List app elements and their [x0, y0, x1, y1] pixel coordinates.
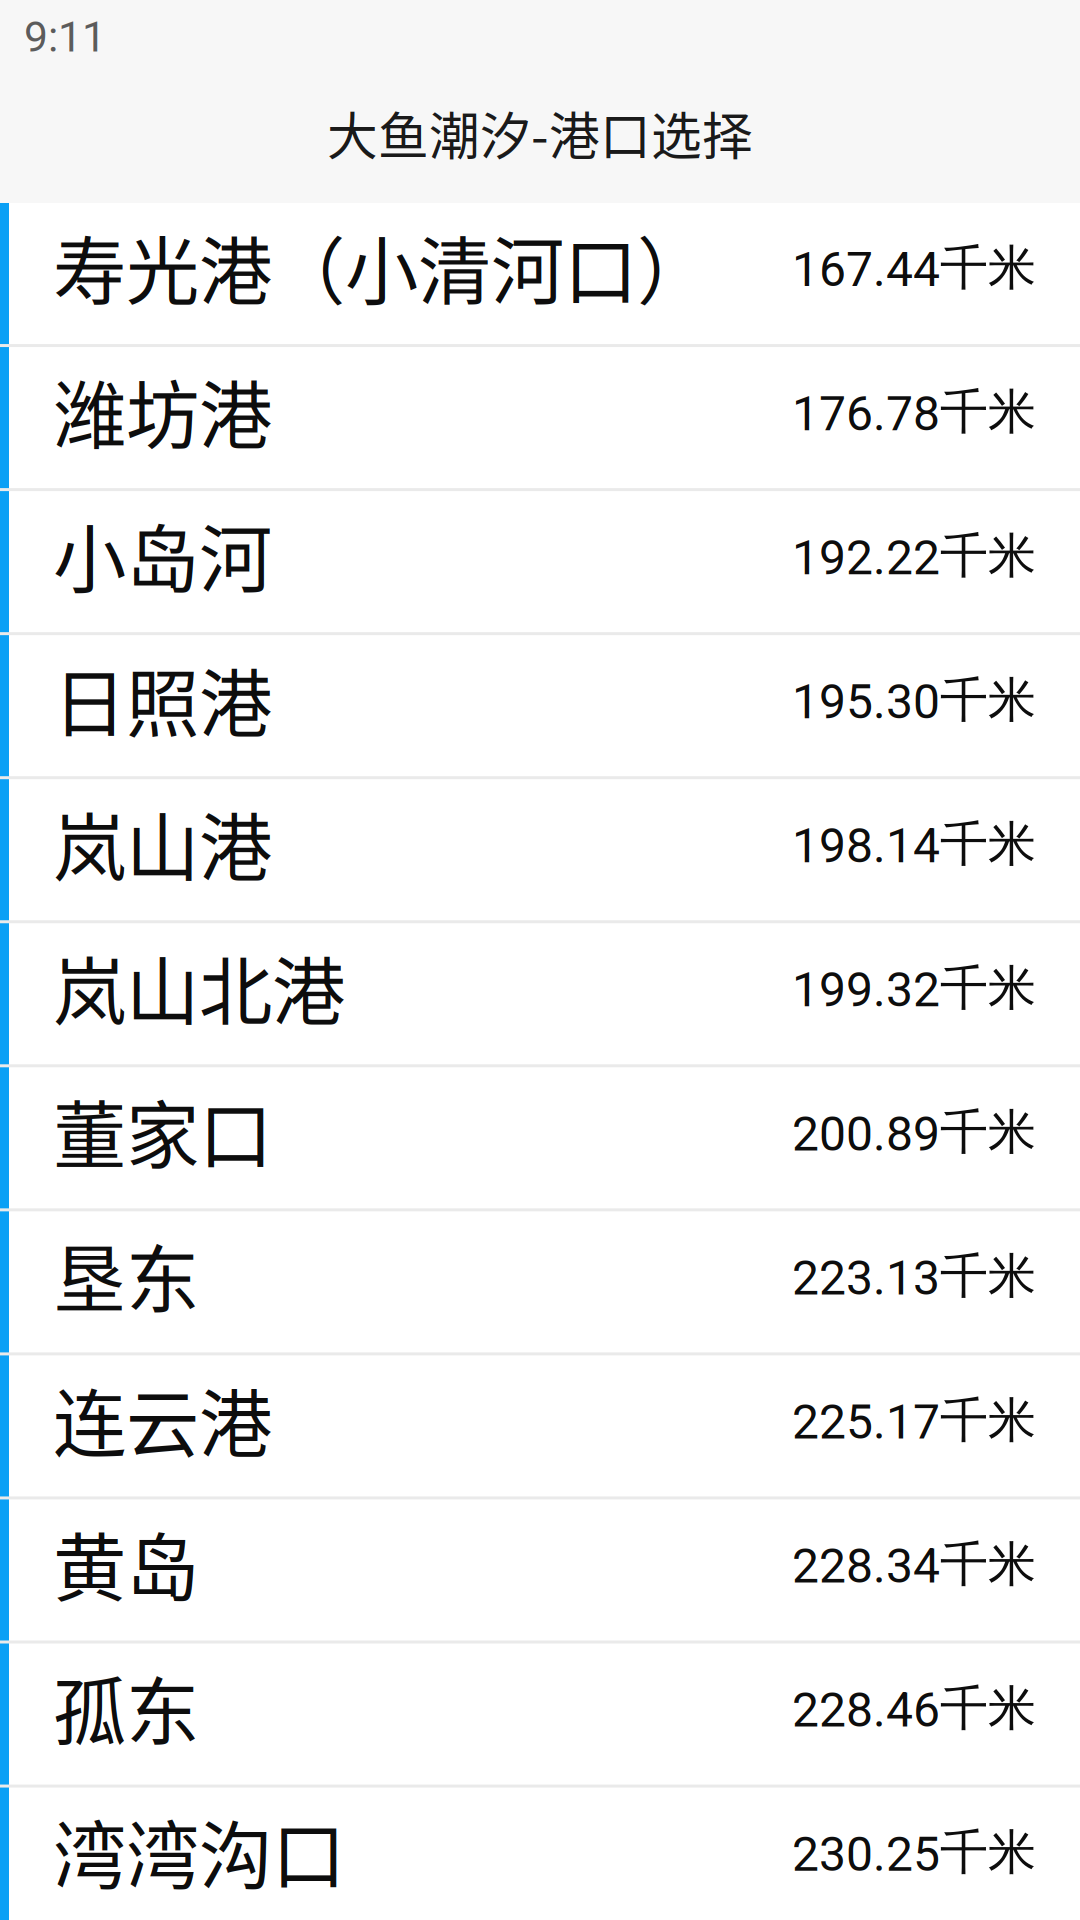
button[interactable]: 黄岛 — [0, 1499, 1080, 1643]
staticText: 223.13千米 — [792, 1246, 1036, 1307]
staticText: 连云港 — [53, 1366, 272, 1472]
button[interactable]: 岚山港 — [0, 779, 1080, 923]
staticText: 200.89千米 — [792, 1102, 1036, 1163]
staticText: 潍坊港 — [53, 357, 272, 464]
button[interactable]: 潍坊港 — [0, 347, 1080, 491]
staticText: 230.25千米 — [792, 1822, 1036, 1883]
button[interactable]: 湾湾沟口 — [0, 1787, 1080, 1920]
staticText: 9:11 — [24, 12, 106, 62]
staticText: 176.78千米 — [792, 382, 1036, 442]
staticText: 228.34千米 — [792, 1534, 1036, 1595]
staticText: 岚山港 — [53, 790, 272, 896]
button[interactable]: 寿光港（小清河口） — [0, 203, 1080, 347]
button[interactable]: 董家口 — [0, 1067, 1080, 1211]
button[interactable]: 垦东 — [0, 1211, 1080, 1355]
staticText: 黄岛 — [53, 1510, 199, 1616]
staticText: 大鱼潮汐-港口选择 — [327, 96, 753, 170]
button[interactable]: 日照港 — [0, 635, 1080, 779]
staticText: 192.22千米 — [792, 526, 1036, 586]
staticText: 225.17千米 — [792, 1390, 1036, 1451]
button[interactable]: 岚山北港 — [0, 923, 1080, 1067]
staticText: 孤东 — [53, 1654, 199, 1760]
staticText: 228.46千米 — [792, 1678, 1036, 1739]
staticText: 董家口 — [53, 1078, 272, 1184]
staticText: 岚山北港 — [53, 934, 345, 1040]
staticText: 198.14千米 — [792, 814, 1036, 874]
staticText: 寿光港（小清河口） — [53, 213, 710, 320]
staticText: 199.32千米 — [792, 958, 1036, 1018]
staticText: 167.44千米 — [792, 238, 1036, 298]
button[interactable]: 小岛河 — [0, 491, 1080, 635]
staticText: 小岛河 — [53, 501, 272, 608]
button[interactable]: 连云港 — [0, 1355, 1080, 1499]
staticText: 195.30千米 — [792, 670, 1036, 730]
staticText: 垦东 — [53, 1222, 199, 1328]
staticText: 湾湾沟口 — [53, 1798, 345, 1904]
button[interactable]: 孤东 — [0, 1643, 1080, 1788]
staticText: 日照港 — [53, 646, 272, 752]
